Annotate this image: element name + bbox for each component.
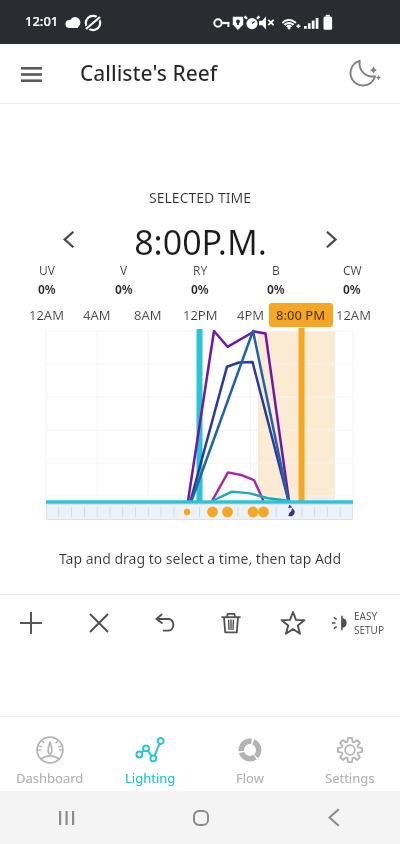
button[interactable]: Delete: [207, 599, 255, 647]
button[interactable]: RY: [170, 262, 230, 296]
button[interactable]: CW: [322, 262, 382, 296]
staticText: EASY: [354, 609, 378, 623]
staticText: 8:00 PM: [276, 306, 326, 324]
staticText: 0%: [38, 281, 56, 296]
staticText: 0%: [191, 281, 209, 296]
button[interactable]: Timeline: [46, 504, 353, 520]
staticText: CW: [343, 262, 362, 278]
staticText: RY: [193, 262, 208, 278]
button[interactable]: Dashboard: [0, 717, 100, 791]
button[interactable]: Open navigation menu: [7, 50, 55, 98]
button[interactable]: Settings: [300, 717, 400, 791]
staticText: Calliste's Reef: [80, 59, 218, 88]
button[interactable]: Next time: [309, 217, 354, 262]
staticText: SETUP: [354, 623, 384, 637]
staticText: 12AM: [336, 306, 371, 324]
button[interactable]: UV: [17, 262, 77, 296]
button[interactable]: Recent apps: [0, 791, 134, 844]
staticText: 8:00P.M.: [134, 219, 267, 265]
button[interactable]: Back: [267, 791, 400, 844]
button[interactable]: Undo: [140, 599, 188, 647]
staticText: 4PM: [237, 306, 265, 324]
button[interactable]: Favorite: [269, 599, 317, 647]
staticText: 4AM: [83, 306, 111, 324]
button[interactable]: V: [94, 262, 154, 296]
staticText: 0%: [267, 281, 285, 296]
staticText: 0%: [343, 281, 361, 296]
staticText: Dashboard: [16, 769, 84, 787]
staticText: Tap and drag to select a time, then tap …: [0, 549, 400, 568]
staticText: V: [120, 262, 128, 278]
staticText: Flow: [236, 769, 264, 787]
staticText: UV: [39, 262, 55, 278]
button[interactable]: Home: [134, 791, 267, 844]
button[interactable]: Night mode: [344, 52, 388, 96]
button[interactable]: Lighting: [100, 717, 200, 791]
staticText: 12AM: [29, 306, 64, 324]
staticText: 12PM: [183, 306, 218, 324]
button[interactable]: Previous time: [46, 217, 91, 262]
button[interactable]: Cancel: [75, 599, 123, 647]
button[interactable]: Add: [7, 599, 55, 647]
staticText: 8AM: [134, 306, 162, 324]
staticText: 12:01: [25, 12, 59, 30]
button[interactable]: B: [246, 262, 306, 296]
staticText: SELECTED TIME: [0, 188, 400, 207]
staticText: 0%: [115, 281, 133, 296]
staticText: Lighting: [125, 769, 176, 787]
staticText: B: [272, 262, 280, 278]
staticText: Settings: [325, 769, 375, 787]
button[interactable]: 8:00 PM: [269, 303, 333, 327]
button[interactable]: EASY: [332, 599, 384, 647]
button[interactable]: Flow: [200, 717, 300, 791]
